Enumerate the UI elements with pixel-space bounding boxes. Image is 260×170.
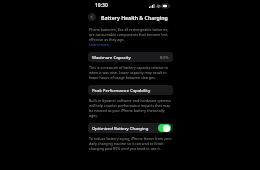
staticText: 83% <box>160 54 169 60</box>
button[interactable]: Maximum Capacity <box>88 52 173 62</box>
staticText: Optimized Battery Charging <box>92 125 149 131</box>
button[interactable]: Back <box>88 13 96 21</box>
button[interactable]: Learn more... <box>89 42 112 47</box>
staticText: Battery Health & Charging <box>101 14 168 21</box>
staticText: 10:30 <box>95 2 108 9</box>
staticText: Built-in dynamic software and hardware s… <box>89 98 172 118</box>
staticText: This is a measure of battery capacity re… <box>89 65 172 80</box>
button[interactable]: Optimized Battery Charging <box>88 123 173 133</box>
staticText: Phone batteries, like all rechargeable b… <box>89 27 172 42</box>
staticText: To reduce battery aging, iPhone learns f… <box>89 136 172 151</box>
button[interactable]: Peak Performance Capability <box>88 85 173 95</box>
staticText: Maximum Capacity <box>92 54 131 60</box>
button[interactable]: Optimized Battery Charging toggle <box>158 124 171 132</box>
staticText: Peak Performance Capability <box>92 87 151 93</box>
